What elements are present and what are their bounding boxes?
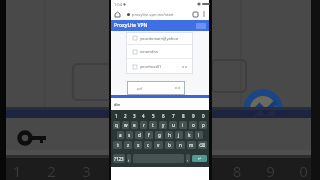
staticText: i bbox=[182, 122, 184, 128]
staticText: z bbox=[127, 142, 130, 148]
staticText: 2 bbox=[124, 113, 127, 119]
staticText: 0 bbox=[202, 113, 205, 119]
staticText: div bbox=[114, 102, 121, 107]
button[interactable]: 4 bbox=[139, 112, 148, 120]
button[interactable]: w bbox=[122, 121, 129, 129]
staticText: y bbox=[162, 122, 165, 128]
button[interactable]: ⇧ bbox=[113, 141, 122, 149]
staticText: url bbox=[137, 86, 143, 91]
button[interactable]: r bbox=[140, 121, 147, 129]
staticText: yourdomain@yahoo bbox=[140, 36, 179, 41]
staticText: 0 bbox=[287, 161, 320, 180]
staticText: f bbox=[148, 132, 150, 138]
button[interactable]: ?123 bbox=[113, 154, 125, 163]
button[interactable]: q bbox=[113, 121, 120, 129]
button[interactable]: yourhost01 bbox=[126, 59, 193, 74]
staticText: , bbox=[128, 156, 130, 162]
staticText: yourhost01 bbox=[140, 64, 162, 69]
staticText: 6 bbox=[162, 113, 165, 119]
button[interactable]: yourdomain@yahoo bbox=[126, 32, 193, 44]
button[interactable]: Tabs bbox=[191, 10, 200, 19]
staticText: 9 bbox=[254, 161, 287, 180]
staticText: v bbox=[157, 142, 160, 148]
staticText: a bbox=[119, 132, 122, 138]
staticText: w bbox=[124, 122, 128, 128]
staticText: 2 bbox=[34, 161, 69, 180]
staticText: d bbox=[138, 132, 141, 138]
button[interactable]: More options bbox=[200, 10, 208, 18]
staticText: smartdns bbox=[140, 49, 158, 54]
button[interactable]: g bbox=[155, 131, 163, 139]
staticText: m bbox=[189, 142, 194, 148]
button[interactable]: z bbox=[124, 141, 132, 149]
staticText: q bbox=[115, 122, 118, 128]
button[interactable]: ⌫ bbox=[198, 141, 207, 149]
button[interactable]: c bbox=[144, 141, 152, 149]
button[interactable]: f bbox=[145, 131, 153, 139]
button[interactable]: 1 bbox=[112, 112, 121, 120]
button[interactable]: b bbox=[165, 141, 174, 149]
staticText: ↵ bbox=[198, 156, 202, 161]
staticText: ⇧ bbox=[116, 143, 120, 148]
staticText: ?123 bbox=[114, 156, 124, 162]
staticText: proxylite-vpn.me/start bbox=[132, 12, 174, 17]
button[interactable]: 3 bbox=[130, 112, 139, 120]
button[interactable]: a bbox=[117, 131, 124, 139]
button[interactable]: l bbox=[195, 131, 203, 139]
button[interactable]: m bbox=[187, 141, 196, 149]
button[interactable]: . bbox=[186, 154, 190, 163]
button[interactable]: 2 bbox=[121, 112, 130, 120]
button[interactable]: Enter bbox=[192, 155, 207, 162]
button[interactable]: smartdns bbox=[126, 45, 193, 58]
button[interactable]: y bbox=[159, 121, 167, 129]
staticText: 8 bbox=[182, 113, 185, 119]
staticText: c bbox=[147, 142, 150, 148]
button[interactable]: v bbox=[154, 141, 163, 149]
staticText: 3 bbox=[69, 161, 104, 180]
button[interactable]: o bbox=[189, 121, 197, 129]
staticText: 5 bbox=[152, 113, 155, 119]
button[interactable]: e bbox=[131, 121, 138, 129]
staticText: t bbox=[152, 122, 154, 128]
staticText: 8 bbox=[220, 161, 254, 180]
button[interactable]: h bbox=[165, 131, 173, 139]
staticText: u bbox=[172, 122, 175, 128]
button[interactable]: url bbox=[127, 81, 185, 95]
staticText: p bbox=[202, 122, 205, 128]
button[interactable]: j bbox=[175, 131, 183, 139]
button[interactable]: n bbox=[176, 141, 185, 149]
staticText: b bbox=[168, 142, 171, 148]
button[interactable]: 6 bbox=[158, 112, 168, 120]
staticText: 1 bbox=[115, 113, 118, 119]
staticText: 4 bbox=[142, 113, 145, 119]
button[interactable]: d bbox=[135, 131, 143, 139]
button[interactable]: k bbox=[185, 131, 193, 139]
button[interactable]: Home bbox=[113, 10, 122, 19]
staticText: 1:04 bbox=[114, 2, 122, 7]
button[interactable]: 8 bbox=[178, 112, 188, 120]
staticText: s bbox=[128, 132, 131, 138]
staticText: o bbox=[192, 122, 195, 128]
button[interactable]: 0 bbox=[198, 112, 208, 120]
button[interactable]: , bbox=[127, 154, 131, 163]
button[interactable]: 5 bbox=[148, 112, 158, 120]
staticText: 3 bbox=[133, 113, 136, 119]
staticText: x bbox=[137, 142, 140, 148]
staticText: l bbox=[198, 132, 200, 138]
button[interactable]: 9 bbox=[188, 112, 198, 120]
button[interactable]: p bbox=[199, 121, 207, 129]
button[interactable]: t bbox=[149, 121, 157, 129]
staticText: ProxyLite VPN bbox=[114, 22, 148, 29]
button[interactable]: x bbox=[134, 141, 142, 149]
button[interactable]: s bbox=[126, 131, 133, 139]
staticText: e bbox=[133, 122, 136, 128]
button[interactable]: u bbox=[169, 121, 177, 129]
staticText: k bbox=[188, 132, 191, 138]
staticText: 1 bbox=[0, 161, 34, 180]
button[interactable]: i bbox=[179, 121, 187, 129]
staticText: j bbox=[178, 132, 180, 138]
staticText: 7 bbox=[172, 113, 175, 119]
button[interactable]: 7 bbox=[168, 112, 178, 120]
